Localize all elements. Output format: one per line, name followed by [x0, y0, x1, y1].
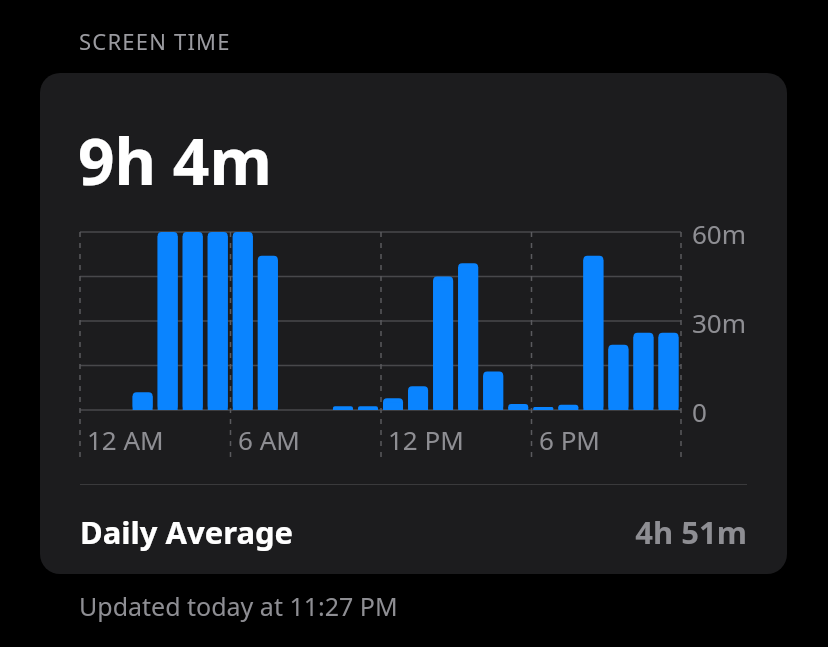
staticText: 6 PM [539, 422, 600, 457]
staticText: 12 AM [87, 422, 164, 457]
other: Hourly screen time chart [0, 0, 828, 647]
staticText: 12 PM [388, 422, 464, 457]
button[interactable]: Daily Average [40, 485, 787, 574]
staticText: Updated today at 11:27 PM [79, 589, 398, 623]
staticText: SCREEN TIME [79, 26, 231, 56]
staticText: 0 [692, 394, 707, 429]
button[interactable] [40, 73, 787, 574]
staticText: Daily Average [80, 511, 294, 553]
staticText: 4h 51m [507, 511, 747, 553]
staticText: 60m [692, 216, 747, 251]
staticText: 30m [692, 305, 747, 340]
staticText: 9h 4m [78, 117, 272, 204]
staticText: 6 AM [238, 422, 300, 457]
